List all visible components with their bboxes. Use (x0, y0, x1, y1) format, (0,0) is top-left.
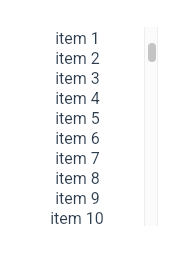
staticText: item 6 (55, 129, 100, 148)
staticText: item 2 (55, 49, 100, 68)
button[interactable]: item 1 (12, 28, 142, 48)
staticText: item 4 (55, 89, 100, 108)
button[interactable]: item 4 (12, 88, 142, 108)
button[interactable]: item 2 (12, 48, 142, 68)
staticText: item 8 (55, 169, 100, 188)
button[interactable]: Scroll bar (144, 27, 158, 226)
button[interactable]: item 3 (12, 68, 142, 88)
staticText: item 10 (50, 209, 104, 228)
staticText: item 3 (55, 69, 100, 88)
staticText: item 1 (55, 29, 100, 48)
staticText: item 5 (55, 109, 100, 128)
button[interactable]: item 9 (12, 188, 142, 208)
staticText: item 9 (55, 189, 100, 208)
button[interactable]: item 10 (12, 208, 142, 228)
staticText: item 7 (55, 149, 100, 168)
button[interactable]: item 7 (12, 148, 142, 168)
button[interactable]: item 6 (12, 128, 142, 148)
button[interactable]: item 5 (12, 108, 142, 128)
button[interactable]: item 8 (12, 168, 142, 188)
